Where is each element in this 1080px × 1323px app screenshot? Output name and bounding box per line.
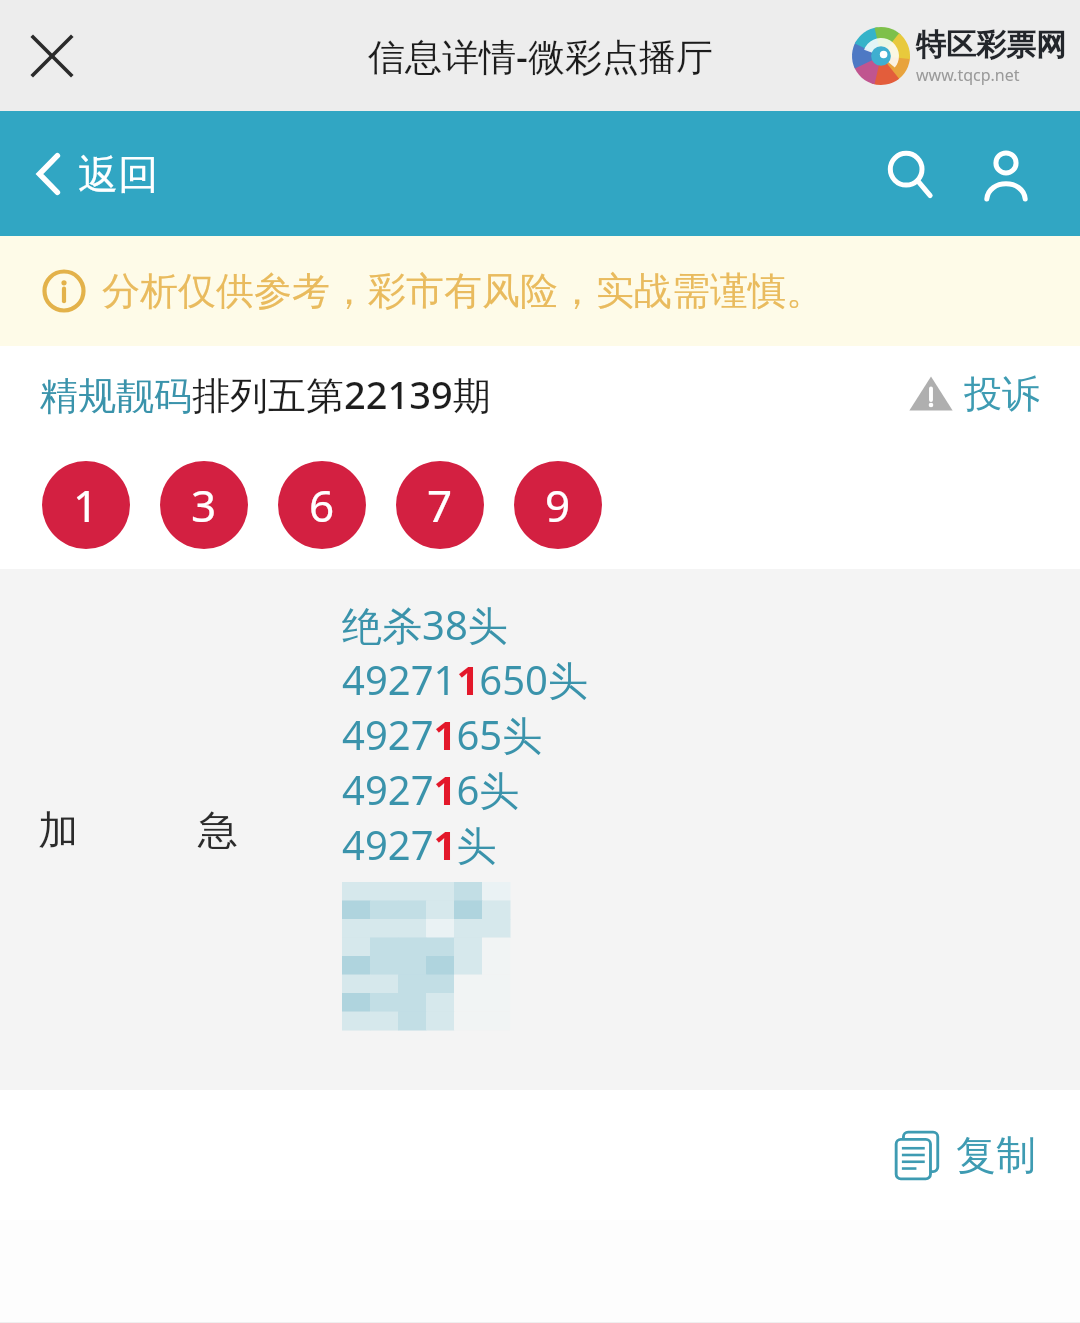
staticText: 精规靓码排列五第22139期 [40,368,491,420]
staticText: 投诉 [964,370,1040,418]
staticText: 3 [191,475,217,535]
staticText: 急 [198,805,238,855]
button[interactable]: 复制 [892,1129,1036,1181]
staticText: 信息详情-微彩点播厅 [368,30,713,81]
button[interactable]: 投诉 [908,370,1040,418]
staticText: 分析仅供参考，彩市有风险，实战需谨慎。 [102,267,824,315]
button[interactable]: Close [16,20,88,92]
staticText: 复制 [956,1130,1036,1180]
staticText: 6 [309,475,335,535]
staticText: 49271头 [342,817,497,872]
staticText: 返回 [78,149,158,199]
staticText: 7 [427,475,453,535]
button[interactable]: Search [872,136,948,212]
button[interactable]: Account [968,136,1044,212]
staticText: www.tqcp.net [916,64,1020,86]
staticText: 特区彩票网 [916,26,1066,64]
staticText: 加 [38,805,78,855]
staticText: 9 [545,475,571,535]
staticText: 绝杀38头 [342,597,508,652]
staticText: 1 [73,475,99,535]
button[interactable]: 返回 [34,149,158,199]
staticText: 4927165头 [342,707,543,762]
staticText: 492711650头 [342,652,588,707]
staticText: 492716头 [342,762,520,817]
